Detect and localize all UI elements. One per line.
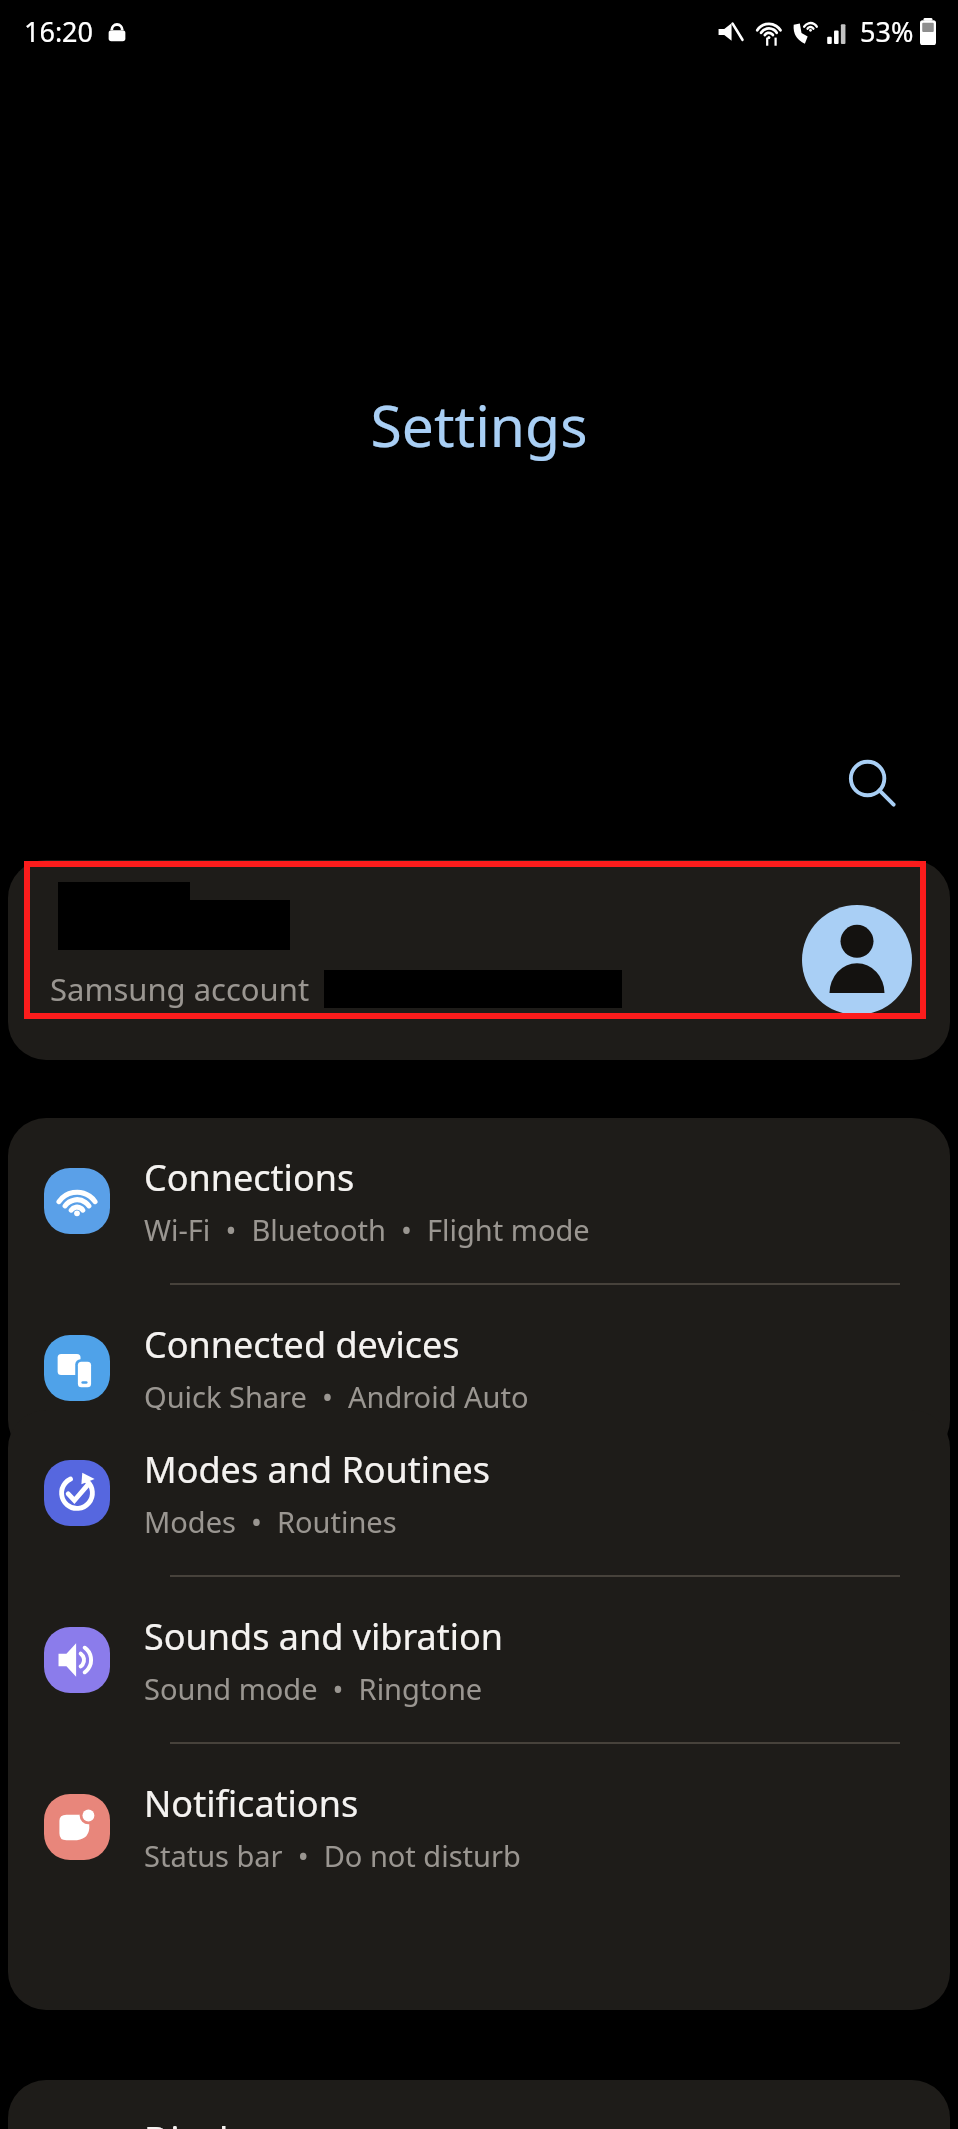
staticText: Status bar • Do not disturb [144,1836,521,1875]
staticText: Display [144,2115,267,2129]
button[interactable]: Search [826,738,920,832]
staticText: 53% [860,13,914,50]
staticText: 16:20 [24,13,94,50]
staticText: Samsung account [50,968,310,1010]
staticText: Quick Share • Android Auto [144,1377,529,1416]
staticText: Modes • Routines [144,1502,397,1541]
staticText: Connections [144,1153,355,1202]
staticText: Sounds and vibration [144,1612,504,1661]
button[interactable]: Notifications [8,1744,950,1909]
staticText: Notifications [144,1779,359,1828]
button[interactable]: Modes and Routines [8,1410,950,1575]
staticText: Wi-Fi • Bluetooth • Flight mode [144,1210,590,1249]
button[interactable]: Connected devices [8,1285,950,1450]
button[interactable]: Display [8,2080,950,2129]
button[interactable]: Samsung account [8,860,950,1060]
staticText: Sound mode • Ringtone [144,1669,483,1708]
staticText: Settings [0,386,958,464]
staticText: Modes and Routines [144,1445,490,1494]
button[interactable]: Connections [8,1118,950,1283]
staticText: Connected devices [144,1320,460,1369]
button[interactable]: Sounds and vibration [8,1577,950,1742]
